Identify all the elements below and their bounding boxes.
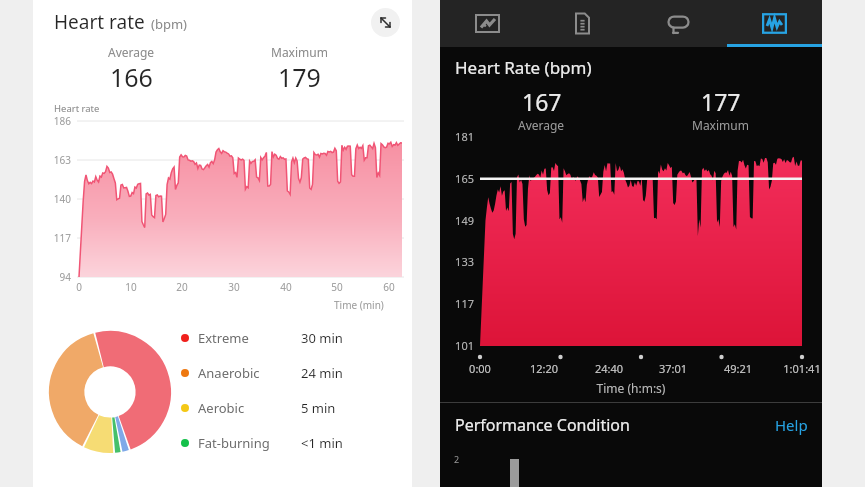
button[interactable]: Details: [535, 0, 630, 47]
staticText: 60: [377, 280, 401, 294]
staticText: (bpm): [151, 15, 187, 33]
button[interactable]: Speed chart: [440, 0, 535, 47]
staticText: Time (min): [334, 298, 384, 312]
staticText: 117: [442, 296, 474, 311]
staticText: 177: [701, 86, 741, 117]
staticText: 166: [110, 60, 153, 94]
button[interactable]: Anaerobic: [181, 362, 408, 384]
button[interactable]: Heart rate: [726, 0, 822, 47]
staticText: Heart rate: [54, 9, 145, 35]
staticText: 24:40: [583, 361, 635, 376]
button[interactable]: Extreme: [181, 327, 408, 349]
staticText: Time (h:m:s): [440, 380, 822, 396]
button[interactable]: Laps: [630, 0, 726, 47]
staticText: 165: [442, 171, 474, 186]
staticText: 2: [454, 453, 460, 465]
staticText: 49:21: [712, 361, 764, 376]
staticText: Extreme: [198, 329, 301, 347]
staticText: 101: [442, 338, 474, 353]
staticText: 30: [222, 280, 246, 294]
staticText: 5 min: [301, 399, 336, 417]
staticText: 10: [119, 280, 143, 294]
staticText: Maximum: [692, 117, 749, 133]
staticText: Anaerobic: [198, 364, 301, 382]
staticText: Aerobic: [198, 399, 301, 417]
staticText: 37:01: [647, 361, 699, 376]
staticText: Heart rate: [54, 102, 100, 115]
staticText: 140: [41, 192, 71, 206]
button[interactable]: Help: [771, 411, 812, 439]
staticText: 30 min: [301, 329, 343, 347]
staticText: 186: [41, 114, 71, 128]
button[interactable]: Expand chart: [371, 8, 400, 37]
staticText: 20: [170, 280, 194, 294]
staticText: 0:00: [454, 361, 506, 376]
staticText: 181: [442, 129, 474, 144]
staticText: 94: [41, 270, 71, 284]
button[interactable]: Aerobic: [181, 397, 408, 419]
staticText: Fat-burning: [198, 434, 301, 452]
staticText: Average: [108, 44, 155, 60]
staticText: <1 min: [301, 434, 343, 452]
staticText: Maximum: [271, 44, 328, 60]
staticText: 167: [522, 86, 562, 117]
staticText: Performance Condition: [455, 414, 630, 436]
staticText: 24 min: [301, 364, 343, 382]
staticText: 0: [67, 280, 91, 294]
staticText: 163: [41, 153, 71, 167]
staticText: Average: [518, 117, 565, 133]
staticText: Help: [775, 415, 808, 435]
staticText: 117: [41, 231, 71, 245]
staticText: 179: [278, 60, 321, 94]
staticText: 133: [442, 254, 474, 269]
staticText: 149: [442, 213, 474, 228]
staticText: 12:20: [518, 361, 570, 376]
staticText: 40: [274, 280, 298, 294]
button[interactable]: Fat-burning: [181, 432, 408, 454]
staticText: 50: [325, 280, 349, 294]
staticText: Heart Rate (bpm): [455, 56, 592, 79]
staticText: 1:01:41: [776, 361, 828, 376]
